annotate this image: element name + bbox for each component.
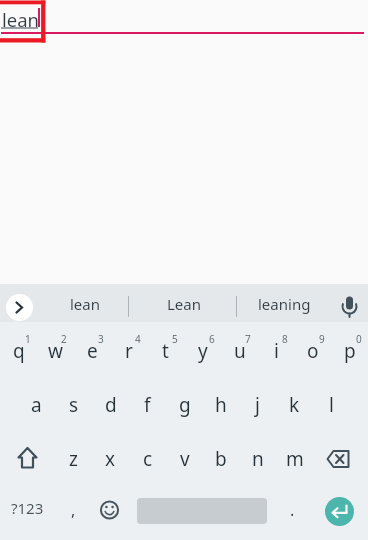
staticText: ?123 (11, 498, 44, 518)
staticText: 8 (282, 332, 288, 346)
button[interactable]: m (276, 430, 313, 484)
staticText: m (286, 446, 304, 472)
button[interactable] (332, 284, 368, 322)
staticText: v (180, 446, 190, 472)
button[interactable]: g (166, 376, 203, 430)
staticText: 3 (98, 332, 104, 346)
button[interactable]: l (313, 376, 350, 430)
button[interactable]: j (239, 376, 276, 430)
staticText: p (344, 338, 356, 364)
button[interactable]: h (202, 376, 239, 430)
staticText: u (234, 338, 246, 364)
button[interactable]: k (276, 376, 313, 430)
button[interactable]: a (18, 376, 55, 430)
staticText: o (307, 338, 319, 364)
staticText: s (69, 392, 79, 418)
staticText: n (252, 446, 264, 472)
button[interactable]: b (202, 430, 239, 484)
staticText: l (329, 392, 334, 418)
staticText: 0 (356, 332, 362, 346)
button[interactable]: x (92, 430, 129, 484)
staticText: e (87, 338, 98, 364)
button[interactable]: o (294, 322, 331, 376)
staticText: z (69, 446, 78, 472)
staticText: , (71, 499, 76, 521)
staticText: 1 (25, 332, 31, 346)
staticText: k (289, 392, 300, 418)
button[interactable]: v (166, 430, 203, 484)
button[interactable]: ?123 (0, 480, 55, 536)
staticText: w (48, 338, 63, 364)
button[interactable] (6, 294, 33, 321)
staticText: r (125, 338, 133, 364)
staticText: q (13, 338, 25, 364)
staticText: 9 (319, 332, 325, 346)
button[interactable]: w (37, 322, 74, 376)
button[interactable]: s (55, 376, 92, 430)
staticText: 7 (245, 332, 251, 346)
button[interactable]: . (274, 482, 311, 538)
staticText: 2 (61, 332, 67, 346)
button[interactable]: z (55, 430, 92, 484)
button[interactable]: r (110, 322, 147, 376)
button[interactable]: , (55, 482, 92, 538)
button[interactable] (313, 430, 368, 484)
button[interactable]: u (221, 322, 258, 376)
button[interactable]: t (147, 322, 184, 376)
staticText: Lean (167, 294, 202, 314)
staticText: a (31, 392, 42, 418)
button[interactable]: q (0, 322, 37, 376)
staticText: x (105, 446, 116, 472)
button[interactable]: f (129, 376, 166, 430)
button[interactable]: lean (40, 285, 130, 323)
button[interactable]: d (92, 376, 129, 430)
staticText: y (198, 338, 208, 364)
staticText: d (105, 392, 117, 418)
staticText: 6 (209, 332, 215, 346)
staticText: . (290, 499, 295, 521)
button[interactable] (0, 0, 368, 44)
staticText: 5 (172, 332, 178, 346)
button[interactable]: c (129, 430, 166, 484)
staticText: g (179, 392, 191, 418)
staticText: lean (2, 7, 40, 32)
staticText: h (215, 392, 227, 418)
staticText: 4 (135, 332, 141, 346)
staticText: j (255, 392, 260, 418)
button[interactable] (325, 497, 354, 526)
button[interactable]: n (239, 430, 276, 484)
button[interactable]: y (184, 322, 221, 376)
button[interactable]: p (331, 322, 368, 376)
button[interactable] (0, 430, 55, 484)
staticText: c (143, 446, 153, 472)
button[interactable]: Lean (139, 285, 229, 323)
button[interactable]: i (258, 322, 295, 376)
staticText: f (144, 392, 151, 418)
staticText: t (162, 338, 169, 364)
staticText: leaning (258, 294, 311, 314)
staticText: i (274, 338, 279, 364)
button[interactable] (92, 484, 129, 540)
staticText: b (215, 446, 227, 472)
button[interactable]: e (74, 322, 111, 376)
button[interactable]: leaning (237, 285, 331, 323)
staticText: lean (70, 294, 101, 314)
